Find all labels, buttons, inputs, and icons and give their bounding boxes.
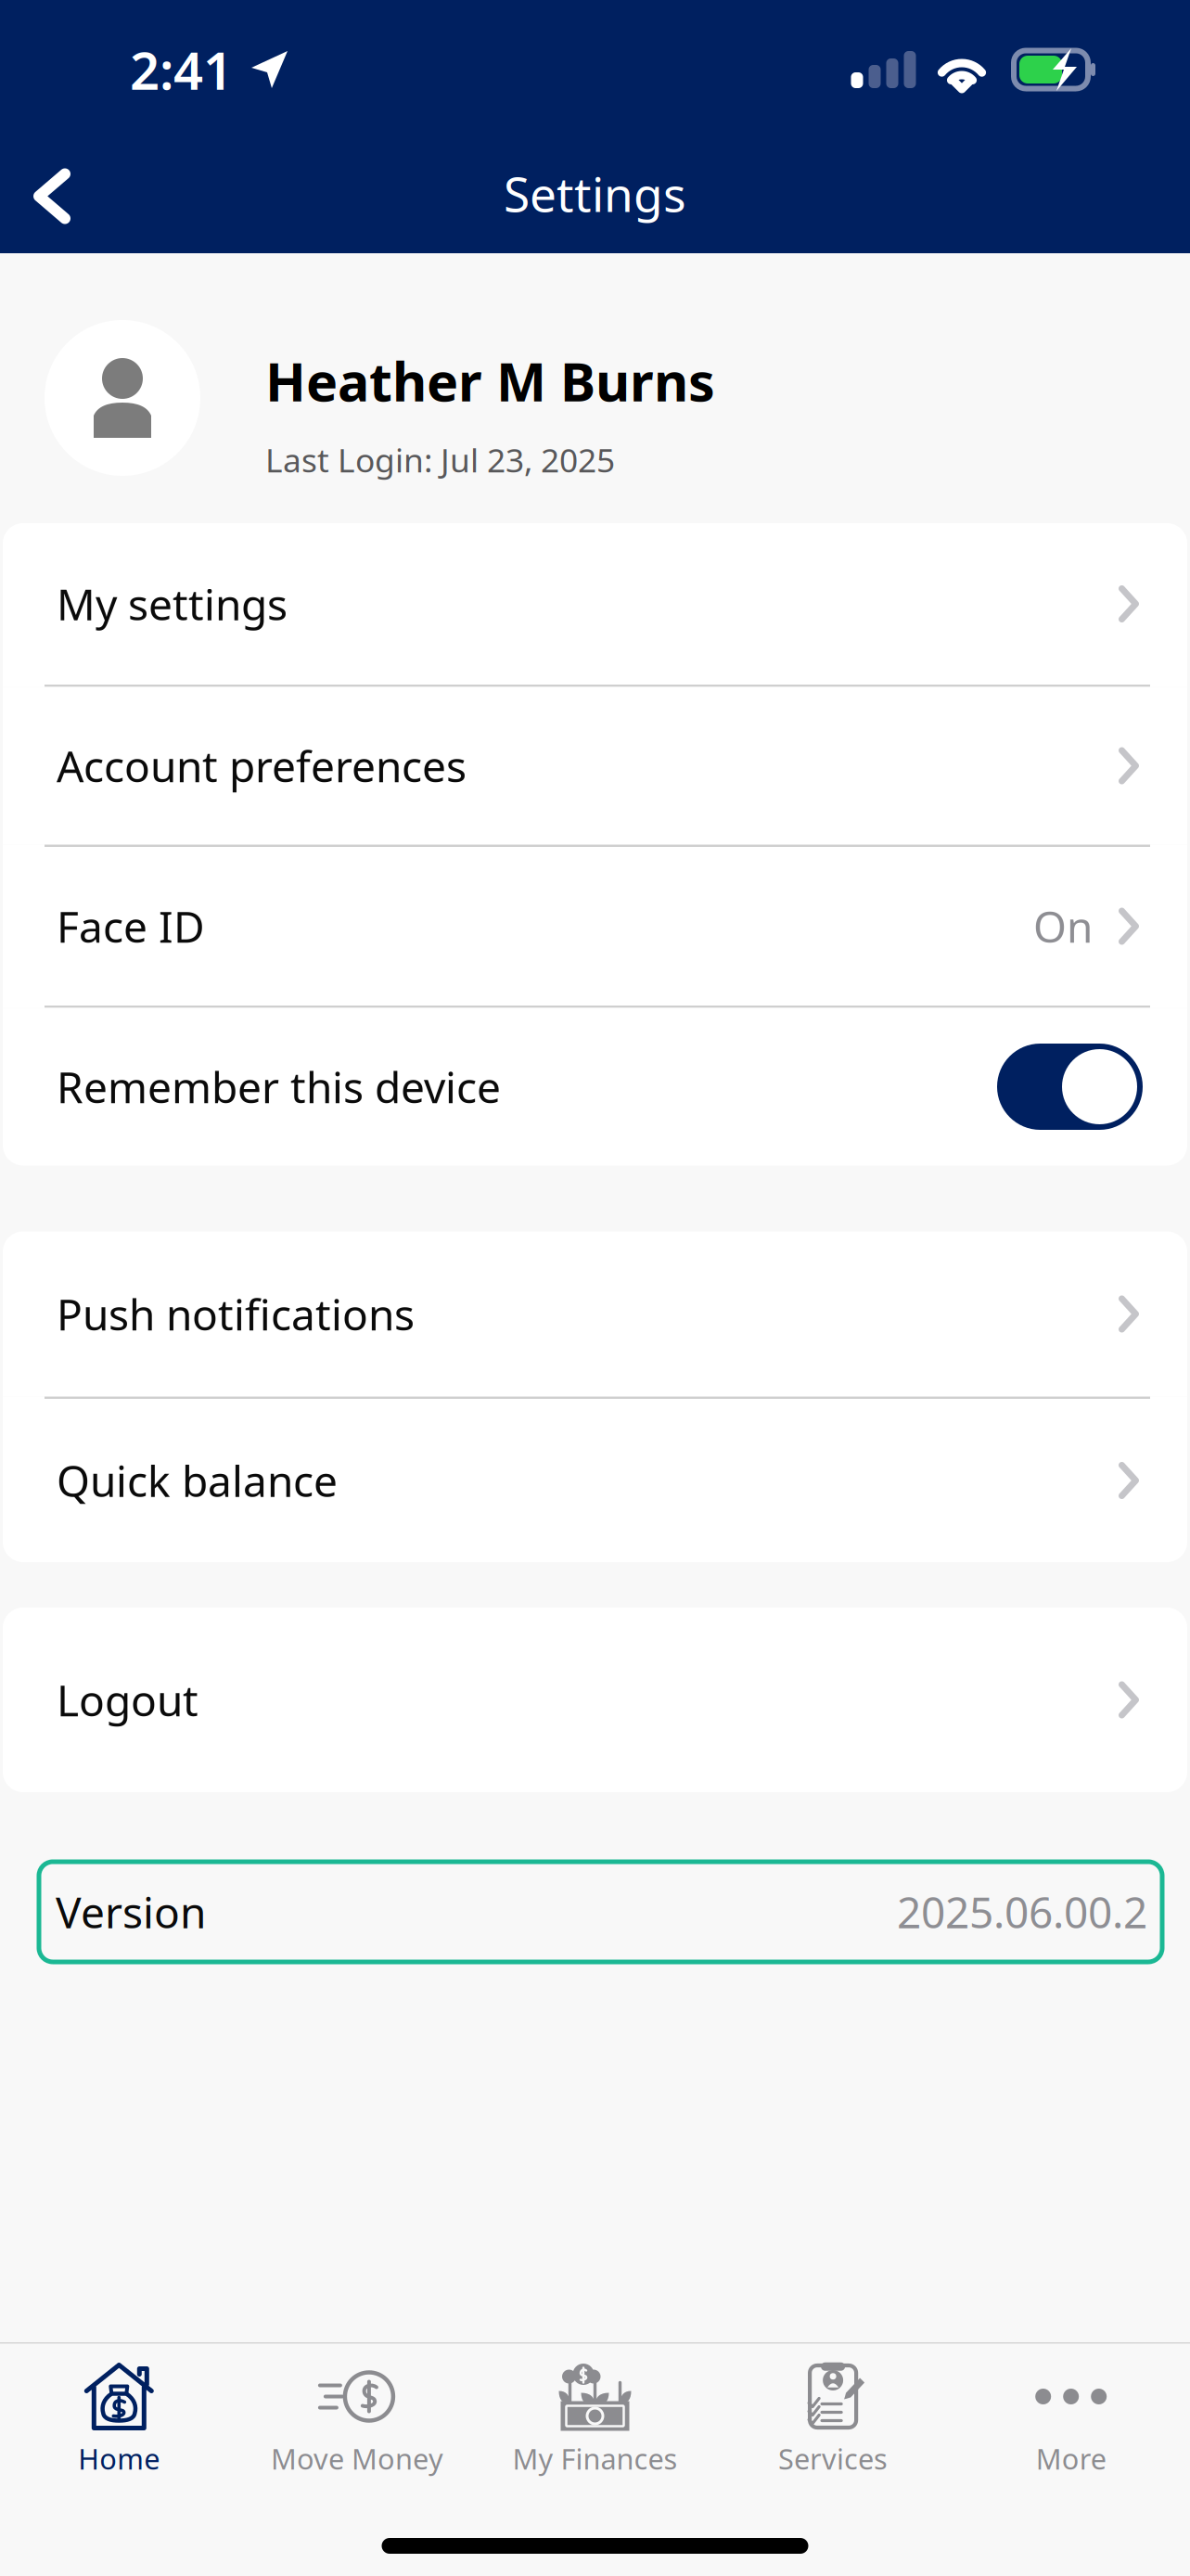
button[interactable]: Back (6, 139, 98, 253)
staticText: Account preferences (57, 737, 467, 795)
staticText: My settings (57, 575, 288, 633)
button[interactable]: Push notifications (3, 1231, 1187, 1397)
staticText: Settings (504, 161, 686, 226)
staticText: Last Login: Jul 23, 2025 (265, 437, 615, 482)
button[interactable]: Quick balance (3, 1399, 1187, 1562)
staticText: Quick balance (57, 1451, 338, 1510)
staticText: 2:41 (130, 34, 233, 105)
staticText: Move Money (271, 2439, 443, 2478)
button[interactable]: Face ID (3, 847, 1187, 1006)
button[interactable]: Logout (3, 1608, 1187, 1792)
button[interactable]: Home (0, 2344, 238, 2492)
staticText: Push notifications (57, 1285, 415, 1343)
staticText: Home (78, 2439, 160, 2478)
staticText: My Finances (512, 2439, 678, 2478)
staticText: Logout (57, 1671, 198, 1729)
staticText: Remember this device (57, 1058, 501, 1116)
staticText: Version (56, 1883, 206, 1941)
button[interactable]: Account preferences (3, 687, 1187, 845)
staticText: On (1033, 897, 1093, 955)
staticText: Heather M Burns (265, 345, 715, 417)
staticText: 2025.06.00.2 (897, 1883, 1147, 1941)
staticText: Services (778, 2439, 888, 2478)
button[interactable]: My settings (3, 523, 1187, 685)
staticText: Face ID (57, 897, 205, 955)
button[interactable]: Services (714, 2344, 952, 2492)
button[interactable]: More (952, 2344, 1190, 2492)
button[interactable]: Move Money (238, 2344, 476, 2492)
button[interactable]: My Finances (476, 2344, 714, 2492)
staticText: More (1036, 2439, 1106, 2478)
button[interactable]: Remember this device (3, 1008, 1187, 1166)
